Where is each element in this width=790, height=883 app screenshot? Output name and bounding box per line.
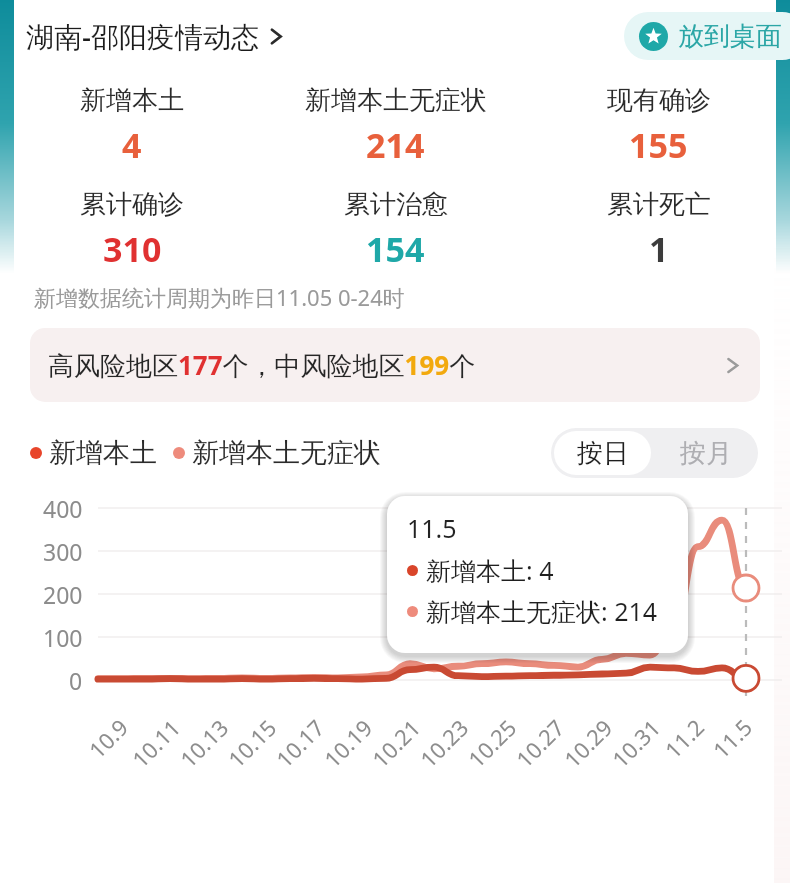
staticText: 按月 bbox=[680, 437, 732, 470]
button[interactable]: 按日 bbox=[554, 431, 651, 475]
staticText: 新增本土无症状 bbox=[305, 84, 487, 117]
button[interactable]: 高风险地区177个，中风险地区199个 bbox=[30, 328, 760, 402]
staticText: 11.5 bbox=[407, 511, 457, 545]
staticText: 1 bbox=[649, 226, 669, 272]
button[interactable]: Add to home screen bbox=[624, 12, 790, 60]
staticText: 累计确诊 bbox=[80, 188, 184, 221]
staticText: 154 bbox=[366, 226, 425, 272]
staticText: 累计死亡 bbox=[607, 188, 711, 221]
button[interactable]: 新增本土 bbox=[30, 436, 157, 470]
button[interactable]: 新增本土无症状 bbox=[264, 84, 527, 168]
button[interactable]: 现有确诊 bbox=[527, 84, 790, 168]
staticText: 214 bbox=[366, 122, 425, 168]
staticText: 310 bbox=[103, 226, 162, 272]
staticText: 现有确诊 bbox=[607, 84, 711, 117]
staticText: 新增本土 bbox=[80, 84, 184, 117]
other: Add to home screen bbox=[639, 22, 668, 51]
button[interactable]: 湖南-邵阳疫情动态 bbox=[26, 17, 286, 55]
staticText: 155 bbox=[629, 122, 688, 168]
staticText: 新增本土无症状 bbox=[192, 436, 381, 470]
button[interactable]: 新增本土 bbox=[0, 84, 264, 168]
staticText: 新增本土: 4 bbox=[426, 553, 554, 587]
staticText: 按日 bbox=[577, 437, 629, 470]
button[interactable]: 按月 bbox=[654, 428, 758, 478]
staticText: 湖南-邵阳疫情动态 bbox=[26, 17, 259, 55]
staticText: 新增数据统计周期为昨日11.05 0-24时 bbox=[34, 282, 405, 312]
staticText: 4 bbox=[122, 122, 142, 168]
button[interactable]: 累计确诊 bbox=[0, 188, 264, 272]
staticText: 放到桌面 bbox=[678, 20, 782, 53]
staticText: 新增本土 bbox=[49, 436, 157, 470]
button[interactable]: 累计死亡 bbox=[527, 188, 790, 272]
button[interactable]: 累计治愈 bbox=[264, 188, 527, 272]
button[interactable]: 新增本土无症状 bbox=[173, 436, 381, 470]
staticText: 高风险地区177个，中风险地区199个 bbox=[48, 347, 725, 383]
staticText: 累计治愈 bbox=[344, 188, 448, 221]
staticText: 新增本土无症状: 214 bbox=[426, 594, 658, 628]
